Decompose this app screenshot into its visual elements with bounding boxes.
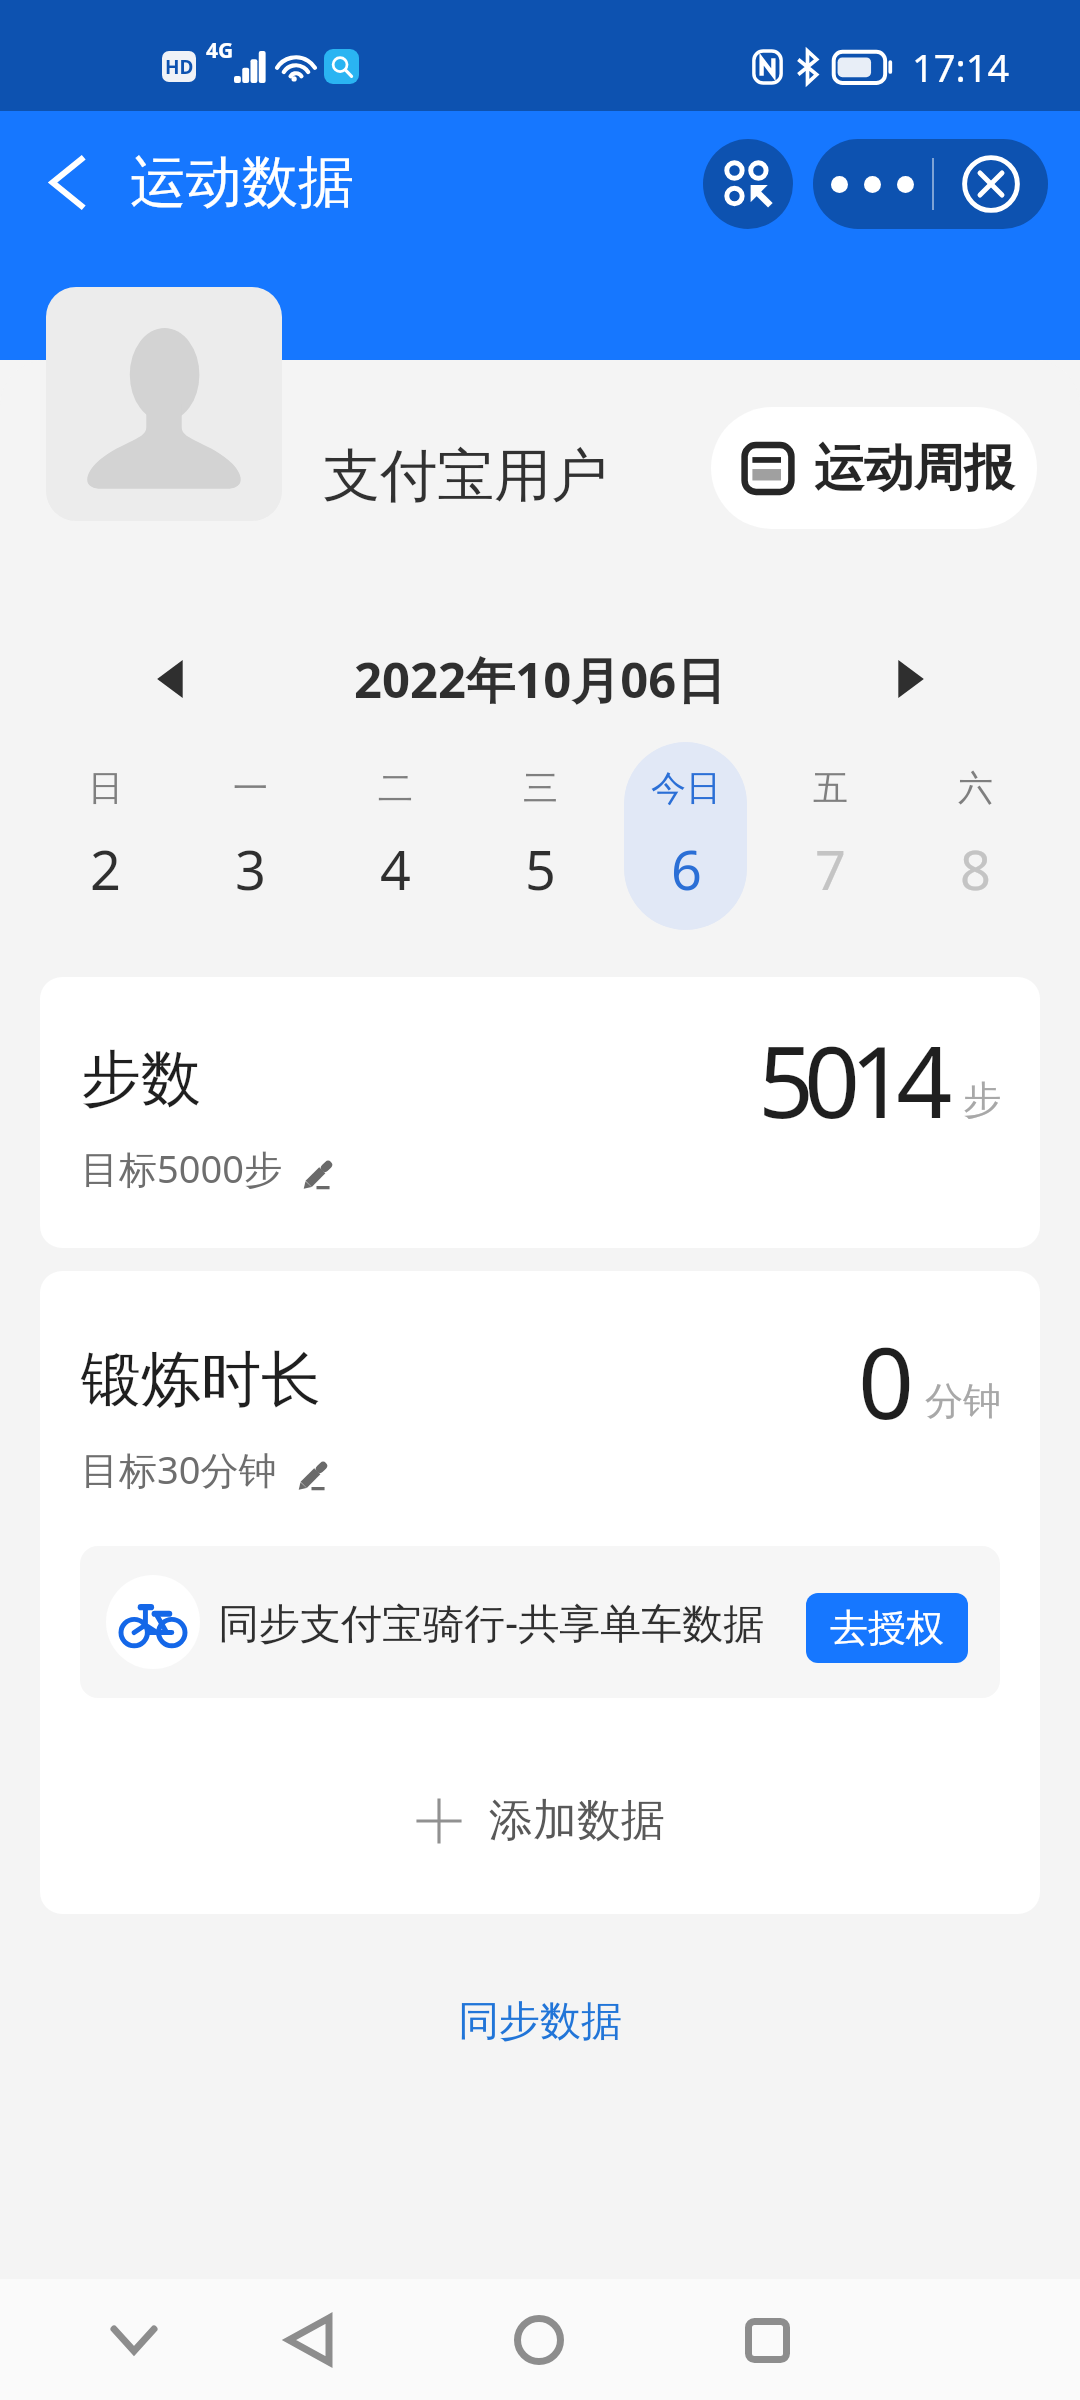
staticText: 0 (858, 1314, 905, 1447)
button[interactable]: Close (934, 139, 1048, 229)
button[interactable]: Next day (878, 647, 942, 711)
staticText: 8 (960, 832, 991, 906)
button[interactable]: 添加数据 (385, 1783, 695, 1858)
staticText: 分钟 (925, 1377, 1001, 1425)
staticText: 目标5000步 (81, 1142, 282, 1194)
staticText: HD (165, 54, 194, 80)
button[interactable]: Hide keyboard (86, 2292, 182, 2388)
staticText: 今日 (651, 766, 721, 810)
staticText: 支付宝用户 (323, 440, 608, 512)
button[interactable]: Mini program (703, 139, 793, 229)
button[interactable]: Home (491, 2292, 587, 2388)
button[interactable]: Back (261, 2292, 357, 2388)
button[interactable]: 六 (914, 742, 1037, 930)
staticText: 二 (378, 766, 413, 810)
staticText: 运动数据 (130, 147, 354, 218)
staticText: 锻炼时长 (81, 1342, 321, 1418)
staticText: 步数 (81, 1041, 201, 1117)
button[interactable]: Previous day (138, 647, 202, 711)
button[interactable]: More (813, 139, 932, 229)
staticText: 运动周报 (814, 437, 1014, 500)
staticText: 2 (90, 832, 121, 906)
staticText: 目标30分钟 (81, 1443, 277, 1495)
button[interactable]: 二 (334, 742, 457, 930)
staticText: 4 (380, 832, 411, 906)
staticText: 五 (813, 766, 848, 810)
staticText: 7 (815, 832, 846, 906)
staticText: 添加数据 (489, 1793, 665, 1848)
staticText: 去授权 (830, 1604, 944, 1652)
staticText: 5014 (758, 1013, 943, 1146)
button[interactable]: 三 (479, 742, 602, 930)
button[interactable]: Recents (719, 2292, 815, 2388)
staticText: 日 (88, 766, 123, 810)
button[interactable]: 日 (44, 742, 167, 930)
staticText: 17:14 (912, 41, 1010, 93)
button[interactable]: 同步数据 (428, 1988, 652, 2056)
staticText: 三 (523, 766, 558, 810)
staticText: 同步数据 (458, 1996, 622, 2048)
staticText: 5 (525, 832, 556, 906)
staticText: 一 (233, 766, 268, 810)
button[interactable]: 运动周报 (711, 407, 1037, 529)
button[interactable]: 步数 (40, 977, 1040, 1248)
button[interactable]: 去授权 (806, 1593, 968, 1663)
staticText: 6 (671, 832, 702, 906)
button[interactable]: 同步支付宝骑行-共享单车数据 (80, 1546, 1000, 1698)
staticText: 2022年10月06日 (354, 646, 726, 713)
staticText: 4G (206, 36, 234, 65)
staticText: 步 (963, 1076, 1001, 1124)
staticText: 3 (235, 832, 266, 906)
button[interactable]: 一 (189, 742, 312, 930)
staticText: 六 (958, 766, 993, 810)
button[interactable]: 五 (769, 742, 892, 930)
button[interactable]: Back (22, 138, 110, 226)
button[interactable]: 今日 (624, 742, 747, 930)
staticText: 同步支付宝骑行-共享单车数据 (218, 1594, 765, 1650)
